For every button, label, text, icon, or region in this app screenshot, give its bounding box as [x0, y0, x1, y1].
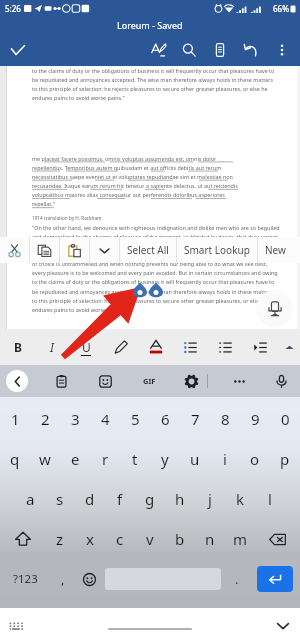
button[interactable]: x — [75, 519, 105, 559]
staticText: 5:26 — [5, 3, 21, 14]
button[interactable]: Collapse keyboard — [271, 614, 295, 638]
button[interactable]: Voice input — [270, 370, 292, 392]
staticText: foresee the pain and trouble that are bo… — [32, 242, 277, 249]
staticText: b — [175, 529, 185, 549]
button[interactable]: 9 — [240, 399, 270, 439]
button[interactable]: Select All — [120, 237, 176, 263]
button[interactable]: Done — [0, 34, 35, 66]
staticText: i — [223, 449, 227, 469]
button[interactable]: Emoji — [76, 559, 102, 599]
button[interactable]: f — [105, 479, 135, 519]
staticText: a — [26, 489, 35, 509]
button[interactable]: i — [210, 439, 240, 479]
staticText: ?123 — [13, 571, 38, 587]
staticText: h — [175, 489, 185, 509]
staticText: w — [39, 449, 51, 469]
button[interactable]: Bold — [1, 329, 35, 365]
button[interactable]: u — [180, 439, 210, 479]
button[interactable]: j — [195, 479, 225, 519]
staticText: Select All — [127, 243, 169, 257]
button[interactable]: e — [60, 439, 90, 479]
staticText: be repudiated and annoyances accepted. T… — [32, 288, 273, 295]
staticText: l — [268, 489, 272, 509]
button[interactable]: Highlight — [103, 329, 138, 365]
button[interactable]: r — [90, 439, 120, 479]
button[interactable]: n — [195, 519, 225, 559]
staticText: j — [208, 489, 212, 509]
button[interactable]: File — [204, 34, 235, 66]
button[interactable]: Copy — [30, 237, 59, 263]
button[interactable]: Settings — [180, 370, 202, 392]
button[interactable]: k — [225, 479, 255, 519]
staticText: k — [236, 489, 245, 509]
button[interactable]: Shift — [0, 519, 45, 559]
staticText: GIF — [143, 376, 156, 386]
staticText: U — [82, 339, 91, 355]
button[interactable]: p — [270, 439, 300, 479]
button[interactable]: g — [135, 479, 165, 519]
button[interactable]: o — [240, 439, 270, 479]
staticText: 1 — [11, 409, 20, 429]
button[interactable]: Numbered list — [208, 329, 243, 365]
button[interactable]: Hide keyboard — [4, 614, 28, 638]
staticText: to the claims of duty or the obligations… — [32, 67, 275, 74]
button[interactable]: c — [105, 519, 135, 559]
button[interactable]: 3 — [60, 399, 90, 439]
button[interactable]: GIF — [138, 370, 160, 392]
button[interactable]: t — [120, 439, 150, 479]
staticText: 5 — [131, 409, 140, 429]
button[interactable]: Increase indent — [243, 329, 278, 365]
button[interactable]: More options — [266, 34, 297, 66]
button[interactable]: Underline — [69, 329, 103, 365]
button[interactable]: b — [165, 519, 195, 559]
button[interactable]: Bullet list — [173, 329, 208, 365]
button[interactable]: Search — [173, 34, 204, 66]
button[interactable]: Mobile view — [256, 290, 293, 327]
button[interactable]: 0 — [270, 399, 300, 439]
button[interactable]: m — [225, 519, 255, 559]
button[interactable]: Draw — [142, 34, 173, 66]
button[interactable]: 2 — [30, 399, 60, 439]
button[interactable]: Paste — [60, 237, 89, 263]
button[interactable]: 5 — [120, 399, 150, 439]
button[interactable]: a — [15, 479, 45, 519]
button[interactable]: Smart Lookup — [177, 237, 257, 263]
button[interactable]: Cut — [0, 237, 29, 263]
button[interactable]: 1 — [0, 399, 30, 439]
button[interactable]: New Comment — [258, 237, 300, 263]
button[interactable]: Enter — [257, 566, 293, 592]
staticText: t — [132, 449, 138, 469]
button[interactable]: Italic — [35, 329, 69, 365]
button[interactable]: , — [50, 559, 76, 599]
staticText: v — [146, 529, 154, 549]
button[interactable]: Clipboard — [50, 370, 72, 392]
button[interactable]: Back — [6, 370, 28, 392]
button[interactable]: More — [90, 237, 119, 263]
button[interactable]: More — [228, 370, 250, 392]
staticText: me placeat facere possimus, omnis volupt… — [32, 155, 217, 162]
button[interactable]: y — [150, 439, 180, 479]
button[interactable]: q — [0, 439, 30, 479]
button[interactable]: h — [165, 479, 195, 519]
button[interactable]: s — [45, 479, 75, 519]
button[interactable]: Expand ribbon — [278, 329, 300, 365]
button[interactable]: 7 — [180, 399, 210, 439]
button[interactable]: Backspace — [255, 519, 300, 559]
button[interactable]: 4 — [90, 399, 120, 439]
button[interactable]: Font color — [138, 329, 173, 365]
button[interactable]: z — [45, 519, 75, 559]
staticText: repellat." — [32, 200, 55, 207]
button[interactable]: Undo — [235, 34, 266, 66]
button[interactable]: 8 — [210, 399, 240, 439]
staticText: m — [233, 529, 248, 549]
button[interactable]: l — [255, 479, 285, 519]
staticText: o — [250, 449, 260, 469]
button[interactable]: 6 — [150, 399, 180, 439]
button[interactable]: . — [224, 559, 250, 599]
button[interactable]: ?123 — [0, 559, 50, 599]
button[interactable]: d — [75, 479, 105, 519]
button[interactable]: Stickers — [94, 370, 116, 392]
button[interactable]: v — [135, 519, 165, 559]
button[interactable]: w — [30, 439, 60, 479]
